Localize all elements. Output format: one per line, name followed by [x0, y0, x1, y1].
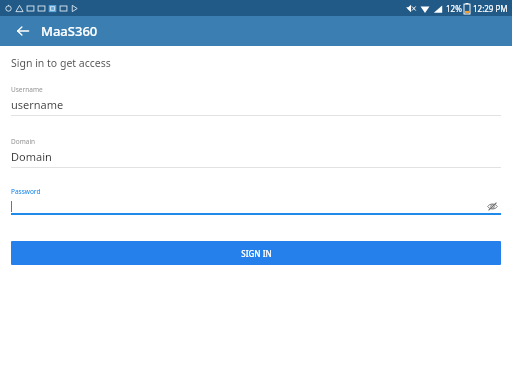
button[interactable]: Domain — [0, 137, 512, 168]
button[interactable]: Show password — [484, 199, 500, 213]
button[interactable]: Password — [0, 187, 512, 215]
staticText: 12% — [446, 3, 462, 14]
staticText: Domain — [11, 149, 52, 164]
button[interactable]: Back — [10, 18, 36, 44]
staticText: MaaS360 — [41, 22, 98, 40]
staticText: Password — [11, 187, 41, 196]
staticText: 12:29 PM — [473, 3, 508, 14]
button[interactable]: SIGN IN — [11, 241, 501, 265]
staticText: Domain — [11, 137, 36, 146]
staticText: Sign in to get access — [11, 56, 111, 70]
button[interactable]: Username — [0, 85, 512, 116]
staticText: Username — [11, 85, 43, 94]
staticText: username — [11, 97, 64, 112]
staticText: SIGN IN — [241, 248, 272, 259]
